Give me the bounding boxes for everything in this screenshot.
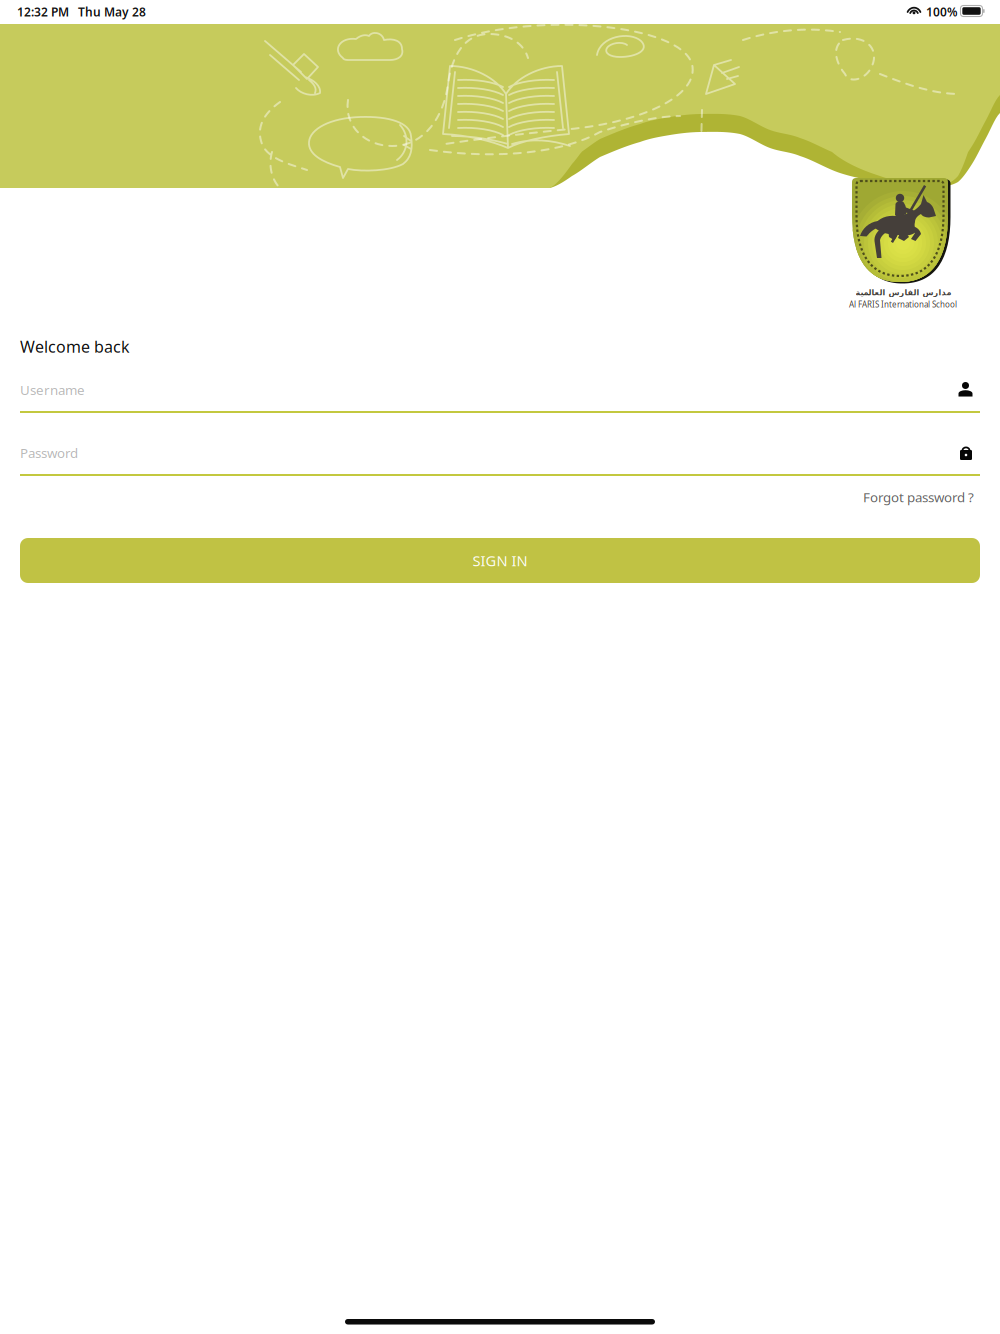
staticText: Username [20, 381, 85, 399]
button[interactable]: SIGN IN [20, 538, 980, 583]
staticText: SIGN IN [472, 551, 527, 570]
button[interactable]: Forgot password ? [694, 484, 974, 510]
staticText: مدارس الفارس العالمية [855, 288, 951, 297]
staticText: Al FARIS International School [849, 299, 957, 310]
staticText: 100% [926, 4, 958, 20]
staticText: Welcome back [20, 336, 130, 357]
button[interactable]: Password [20, 444, 980, 486]
button[interactable]: Username [20, 381, 980, 423]
staticText: Forgot password ? [863, 488, 974, 506]
staticText: Password [20, 444, 78, 462]
staticText: 12:32 PM [17, 4, 69, 20]
staticText: Thu May 28 [78, 4, 146, 20]
